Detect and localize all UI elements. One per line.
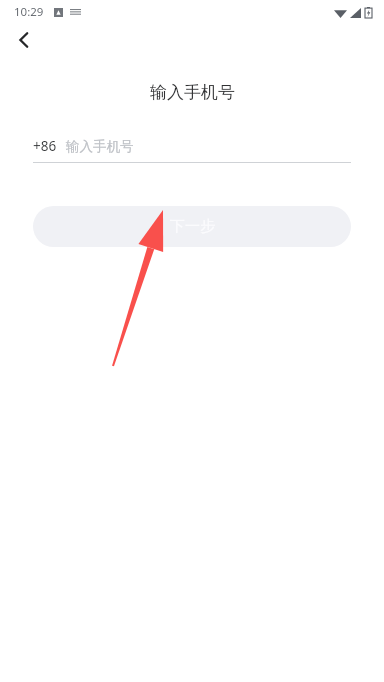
staticText: 输入手机号 xyxy=(150,82,235,103)
staticText: +86 xyxy=(33,137,57,155)
button[interactable]: +86 xyxy=(33,133,351,159)
staticText: 下一步 xyxy=(170,217,215,236)
button[interactable]: Back xyxy=(6,22,42,58)
staticText: 10:29 xyxy=(14,4,44,20)
staticText: 输入手机号 xyxy=(66,138,134,155)
button[interactable]: 下一步 xyxy=(33,206,351,247)
